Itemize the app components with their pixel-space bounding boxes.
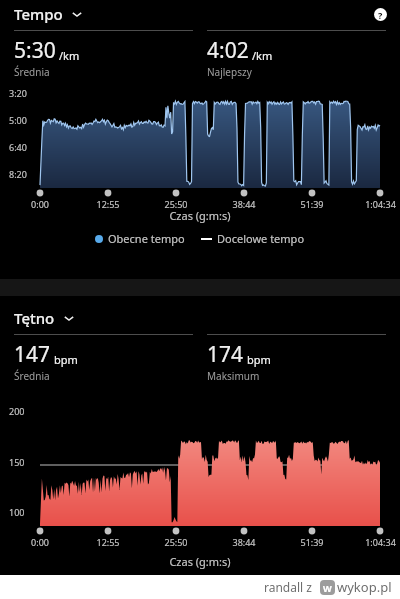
staticText: 1:04:34 bbox=[365, 198, 396, 210]
staticText: 5:30 bbox=[14, 36, 56, 65]
staticText: 51:39 bbox=[300, 198, 324, 210]
staticText: randall z bbox=[264, 579, 312, 595]
staticText: bpm bbox=[54, 352, 78, 367]
staticText: ? bbox=[378, 9, 383, 21]
staticText: 12:55 bbox=[96, 198, 120, 210]
button[interactable]: 147 bbox=[14, 334, 193, 383]
staticText: Maksimum bbox=[207, 369, 260, 383]
staticText: 200 bbox=[9, 405, 25, 417]
staticText: wykop.pl bbox=[337, 578, 392, 596]
button[interactable]: 174 bbox=[207, 334, 386, 383]
staticText: bpm bbox=[247, 352, 271, 367]
staticText: /km bbox=[252, 48, 273, 63]
staticText: 0:00 bbox=[31, 536, 49, 548]
staticText: 25:50 bbox=[164, 198, 188, 210]
staticText: Tętno bbox=[14, 308, 55, 328]
staticText: 147 bbox=[14, 340, 51, 369]
staticText: 3:20 bbox=[9, 87, 27, 99]
staticText: /km bbox=[59, 48, 80, 63]
button[interactable]: Tętno bbox=[14, 308, 75, 328]
staticText: 0:00 bbox=[31, 198, 49, 210]
button[interactable]: 4:02 bbox=[207, 30, 386, 79]
staticText: 150 bbox=[9, 456, 25, 468]
staticText: 51:39 bbox=[300, 536, 324, 548]
staticText: 100 bbox=[9, 506, 25, 518]
staticText: Czas (g:m:s) bbox=[0, 554, 400, 569]
staticText: Najlepszy bbox=[207, 65, 252, 79]
staticText: 1:04:34 bbox=[365, 536, 396, 548]
staticText: 38:44 bbox=[232, 536, 256, 548]
button[interactable]: Help bbox=[369, 3, 391, 25]
staticText: 6:40 bbox=[9, 141, 27, 153]
staticText: Średnia bbox=[14, 369, 50, 383]
button[interactable]: Tempo bbox=[14, 4, 83, 24]
staticText: 4:02 bbox=[207, 36, 249, 65]
staticText: Docelowe tempo bbox=[217, 231, 305, 246]
staticText: 174 bbox=[207, 340, 244, 369]
staticText: Średnia bbox=[14, 65, 50, 79]
staticText: Tempo bbox=[14, 4, 63, 24]
staticText: 38:44 bbox=[232, 198, 256, 210]
staticText: Obecne tempo bbox=[108, 231, 185, 246]
staticText: 8:20 bbox=[9, 168, 27, 180]
button[interactable]: 5:30 bbox=[14, 30, 193, 79]
staticText: 5:00 bbox=[9, 114, 27, 126]
staticText: W bbox=[323, 582, 332, 594]
staticText: 12:55 bbox=[96, 536, 120, 548]
staticText: 25:50 bbox=[164, 536, 188, 548]
staticText: Czas (g:m:s) bbox=[0, 208, 400, 223]
